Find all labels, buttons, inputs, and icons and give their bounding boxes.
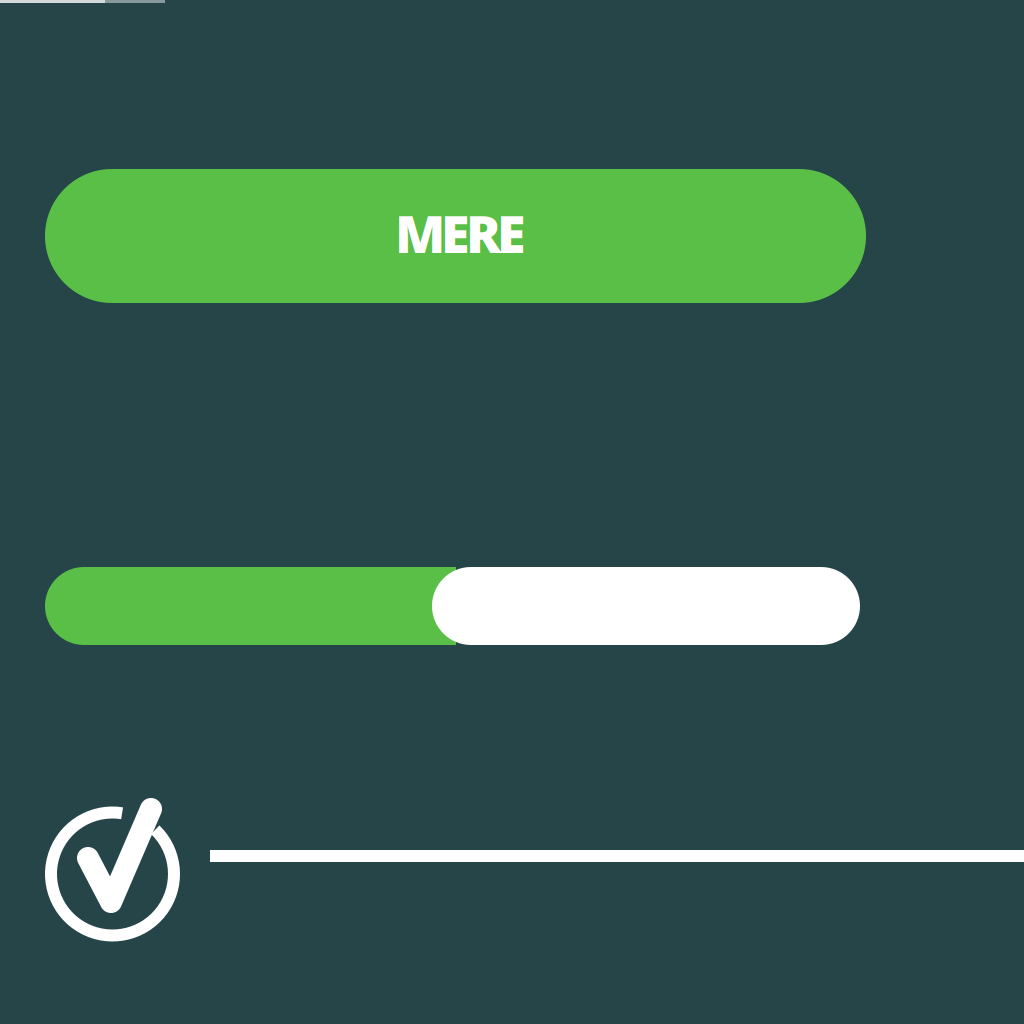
staticText: MERE [395, 198, 526, 268]
button[interactable]: MERE [45, 169, 866, 303]
button[interactable]: Completed task [42, 795, 1024, 943]
